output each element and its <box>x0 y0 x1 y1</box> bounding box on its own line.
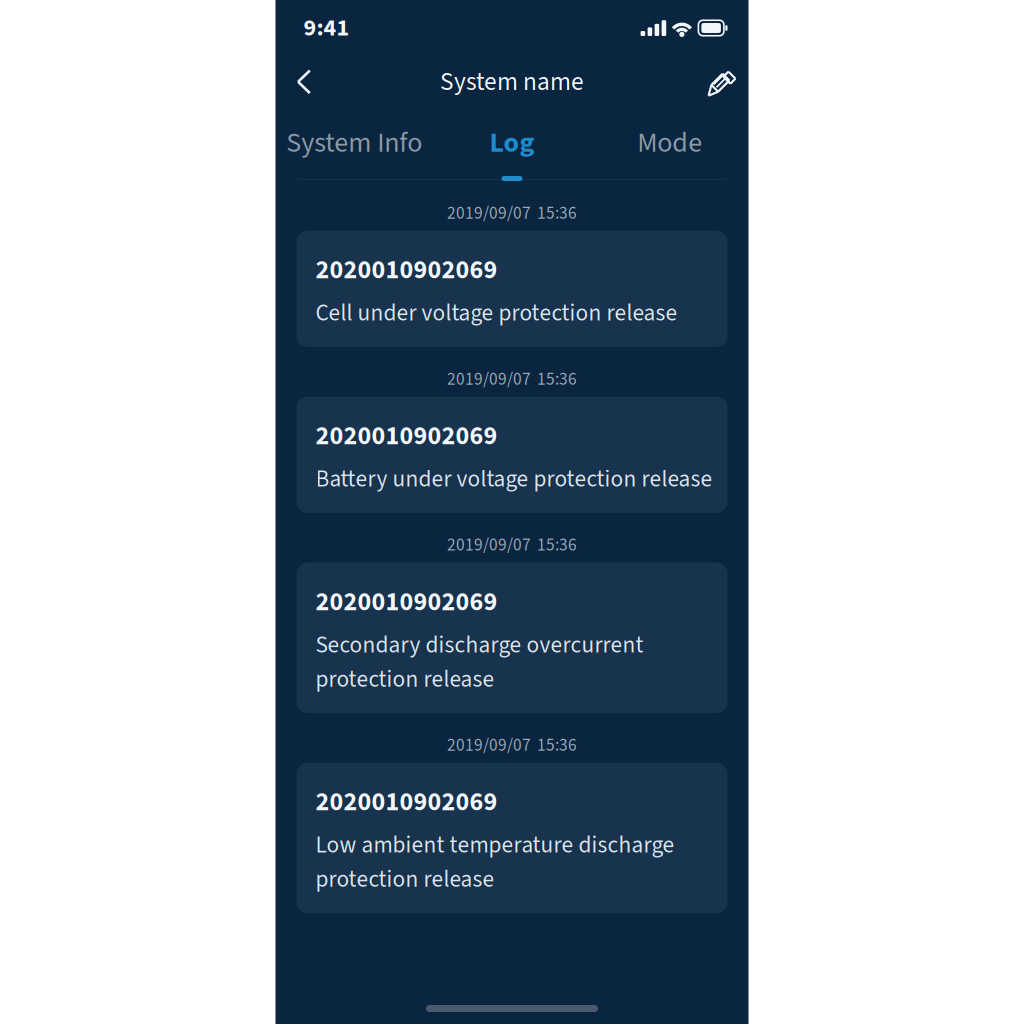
staticText: Battery under voltage protection release <box>315 463 712 496</box>
staticText: 9:41 <box>303 11 349 45</box>
staticText: System Info <box>286 123 422 163</box>
button[interactable]: Mode <box>591 120 748 166</box>
staticText: 2019/09/07 15:36 <box>447 533 577 558</box>
staticText: Low ambient temperature discharge protec… <box>315 829 674 896</box>
staticText: Mode <box>637 123 702 163</box>
staticText: Log <box>489 123 534 163</box>
button[interactable]: 2020010902069 <box>296 397 727 513</box>
staticText: 2020010902069 <box>315 252 497 289</box>
button[interactable]: System Info <box>275 120 433 166</box>
button[interactable]: Back <box>296 60 340 104</box>
staticText: 2020010902069 <box>315 784 497 821</box>
staticText: 2020010902069 <box>315 418 497 455</box>
staticText: 2020010902069 <box>315 583 497 620</box>
staticText: Cell under voltage protection release <box>315 297 677 330</box>
staticText: 2019/09/07 15:36 <box>447 367 577 392</box>
button[interactable]: 2020010902069 <box>296 231 727 347</box>
button[interactable]: Log <box>433 120 591 166</box>
staticText: 2019/09/07 15:36 <box>447 733 577 758</box>
button[interactable]: 2020010902069 <box>296 562 727 713</box>
staticText: Secondary discharge overcurrent protecti… <box>315 629 643 696</box>
staticText: 2019/09/07 15:36 <box>447 201 577 226</box>
button[interactable]: Edit <box>689 60 733 104</box>
button[interactable]: 2020010902069 <box>296 763 727 913</box>
staticText: System name <box>440 64 584 100</box>
